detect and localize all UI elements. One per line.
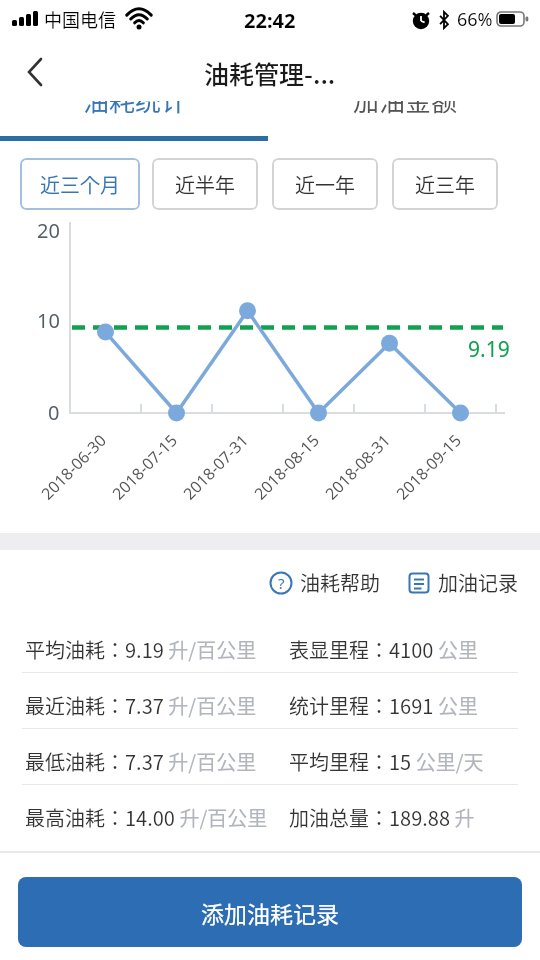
button[interactable]: 近半年	[152, 158, 258, 210]
staticText: 近半年	[175, 170, 235, 199]
staticText: 平均油耗：9.19 升/百公里	[25, 635, 257, 664]
staticText: 最低油耗：7.37 升/百公里	[25, 747, 257, 776]
staticText: 添加油耗记录	[201, 896, 339, 929]
staticText: 最近油耗：7.37 升/百公里	[25, 691, 257, 720]
button[interactable]: 近一年	[272, 158, 378, 210]
staticText: 2018-09-15	[391, 429, 465, 503]
staticText: 加油总量：189.88 升	[289, 803, 475, 832]
button[interactable]: 近三年	[392, 158, 498, 210]
button[interactable]: 加油记录	[407, 568, 518, 597]
button[interactable]: 加油金额	[270, 101, 540, 141]
staticText: 统计里程：1691 公里	[289, 691, 478, 720]
staticText: 油耗统计	[83, 101, 188, 119]
staticText: ?	[278, 573, 285, 593]
staticText: 22:42	[244, 7, 296, 34]
staticText: 0	[48, 399, 60, 426]
staticText: 近三年	[415, 170, 475, 199]
staticText: 近三个月	[40, 170, 120, 199]
staticText: 20	[37, 217, 60, 244]
staticText: 加油记录	[438, 568, 518, 597]
button[interactable]	[17, 54, 53, 90]
staticText: 油耗帮助	[300, 568, 380, 597]
staticText: 2018-07-15	[107, 429, 181, 503]
button[interactable]: 近三个月	[20, 158, 140, 210]
staticText: 9.19	[468, 335, 510, 364]
staticText: 油耗管理-...	[204, 55, 336, 91]
staticText: 中国电信	[44, 6, 116, 32]
staticText: 表显里程：4100 公里	[289, 635, 478, 664]
staticText: 近一年	[295, 170, 355, 199]
button[interactable]: ?	[269, 568, 380, 597]
staticText: 加油金额	[353, 101, 458, 119]
button[interactable]: 添加油耗记录	[18, 877, 522, 947]
staticText: 10	[37, 307, 60, 334]
staticText: 平均里程：15 公里/天	[289, 747, 484, 776]
staticText: 66%	[457, 7, 493, 32]
staticText: 2018-07-31	[178, 429, 252, 503]
staticText: 2018-08-15	[249, 429, 323, 503]
staticText: 2018-08-31	[320, 429, 394, 503]
staticText: 2018-06-30	[36, 429, 110, 503]
staticText: 最高油耗：14.00 升/百公里	[25, 803, 268, 832]
button[interactable]: 油耗统计	[0, 101, 270, 141]
